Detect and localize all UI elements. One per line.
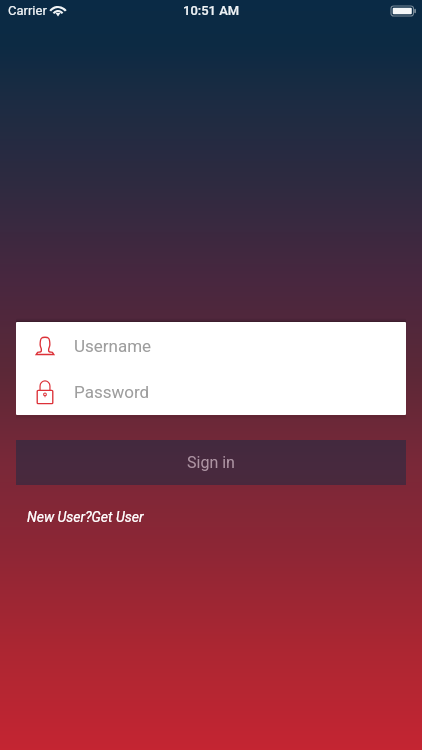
button[interactable]: Username [16,322,406,369]
button[interactable]: New User?Get User [27,509,144,525]
staticText: Carrier [8,3,47,18]
other: Battery full [391,6,417,16]
staticText: Username [74,336,152,356]
button[interactable]: Sign in [16,440,406,485]
staticText: Password [74,382,150,402]
staticText: New User?Get User [27,509,144,525]
staticText: Sign in [187,453,235,472]
staticText: 10:51 AM [183,3,240,18]
button[interactable]: Password [16,369,406,415]
